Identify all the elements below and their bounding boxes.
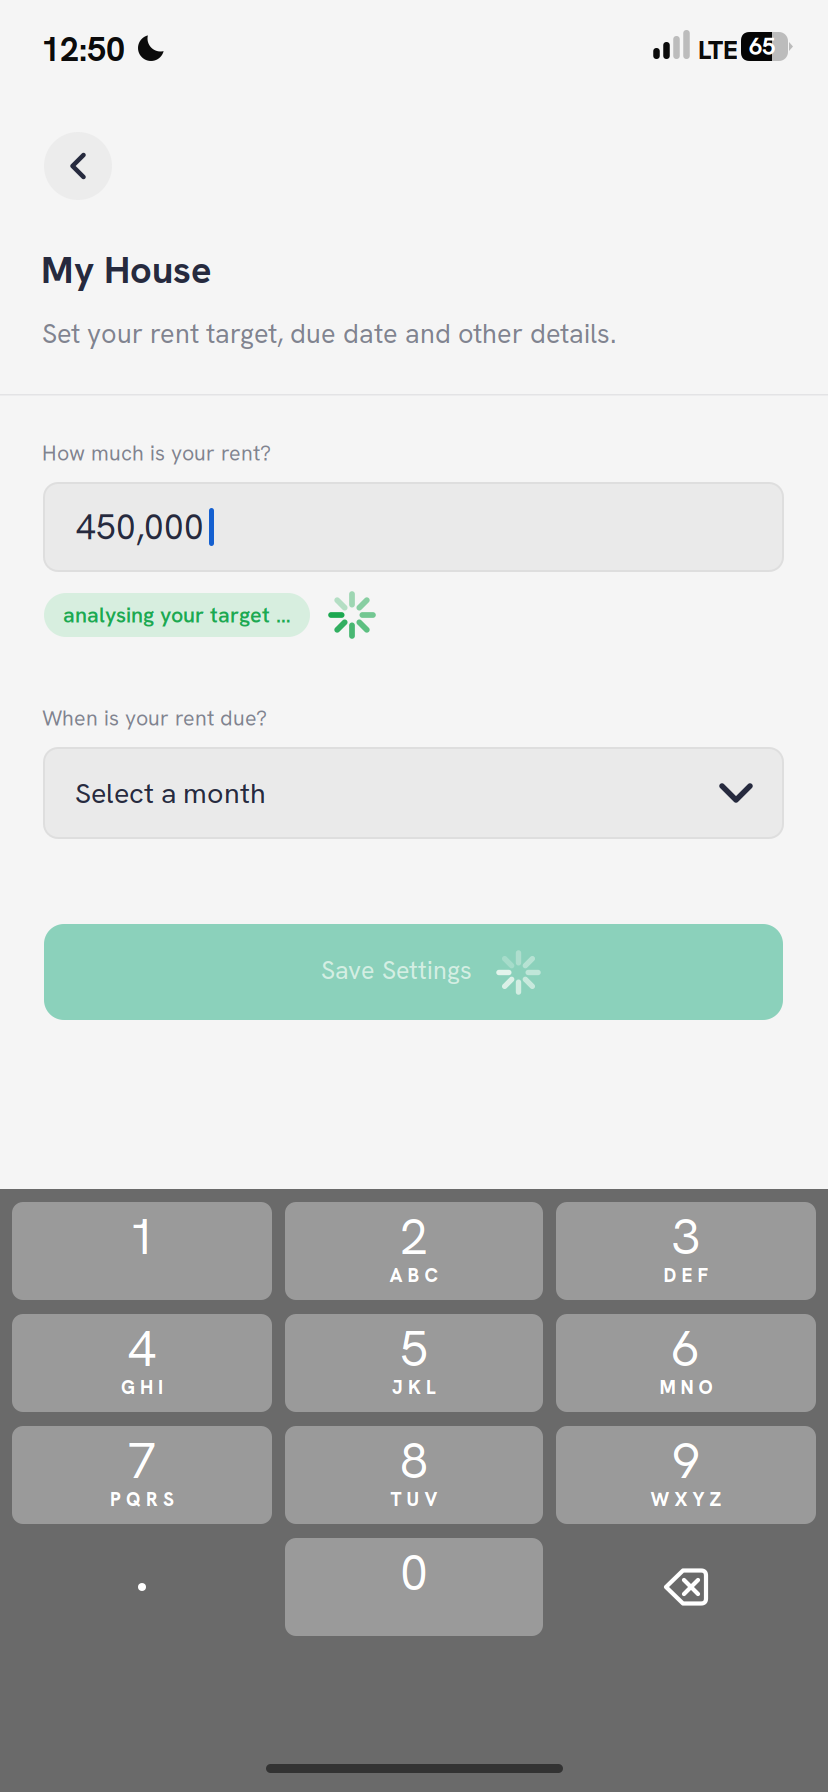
button[interactable]: 0 — [285, 1538, 543, 1636]
staticText: J K L — [392, 1375, 436, 1400]
staticText: analysing your target … — [63, 601, 291, 629]
button[interactable]: 2 — [285, 1202, 543, 1300]
staticText: G H I — [121, 1375, 163, 1400]
button[interactable]: Save Settings — [44, 924, 783, 1020]
button[interactable]: 7 — [12, 1426, 272, 1524]
staticText: Save Settings — [321, 954, 472, 987]
button[interactable]: 8 — [285, 1426, 543, 1524]
staticText: A B C — [389, 1263, 438, 1288]
staticText: Set your rent target, due date and other… — [42, 316, 616, 351]
staticText: 0 — [400, 1540, 428, 1605]
staticText: D E F — [663, 1263, 708, 1288]
button[interactable]: 1 — [12, 1202, 272, 1300]
staticText: 7 — [128, 1428, 156, 1493]
staticText: 9 — [672, 1428, 700, 1493]
staticText: How much is your rent? — [42, 439, 271, 467]
staticText: 12:50 — [41, 27, 125, 71]
staticText: 450,000 — [76, 504, 204, 550]
staticText: 2 — [400, 1204, 428, 1269]
staticText: 8 — [400, 1428, 428, 1493]
staticText: 3 — [672, 1204, 700, 1269]
staticText: When is your rent due? — [42, 704, 267, 732]
button[interactable]: 450,000 — [44, 483, 783, 571]
button[interactable]: Select a month — [44, 748, 783, 838]
button[interactable]: 6 — [556, 1314, 816, 1412]
staticText: 5 — [400, 1316, 428, 1381]
staticText: 65 — [749, 31, 775, 62]
staticText: T U V — [390, 1487, 437, 1512]
staticText: W X Y Z — [650, 1487, 721, 1512]
button[interactable]: Back — [44, 132, 112, 200]
staticText: M N O — [659, 1375, 712, 1400]
staticText: LTE — [698, 33, 738, 67]
staticText: 4 — [128, 1316, 156, 1381]
staticText: 6 — [672, 1316, 700, 1381]
button[interactable]: 5 — [285, 1314, 543, 1412]
staticText: 1 — [128, 1204, 156, 1269]
staticText: My House — [41, 245, 212, 294]
staticText: Select a month — [75, 774, 266, 812]
button[interactable]: 3 — [556, 1202, 816, 1300]
button[interactable]: Decimal point — [12, 1538, 272, 1636]
button[interactable]: 9 — [556, 1426, 816, 1524]
staticText: P Q R S — [110, 1487, 174, 1512]
button[interactable]: Delete — [556, 1538, 816, 1636]
button[interactable]: 4 — [12, 1314, 272, 1412]
